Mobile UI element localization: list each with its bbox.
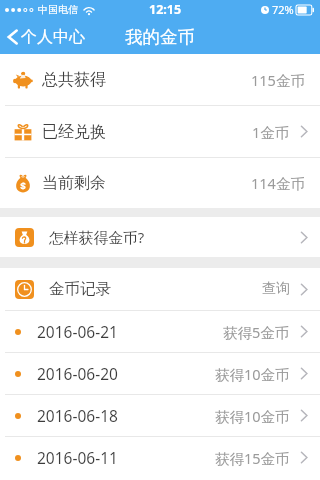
button[interactable]: Coin records (0, 268, 320, 310)
button[interactable]: Current balance (0, 158, 320, 208)
other: How to earn coins (15, 228, 34, 247)
staticText: 个人中心 (21, 27, 85, 47)
other: Redeemed (13, 122, 33, 142)
button[interactable]: 个人中心 (4, 22, 88, 52)
staticText: 怎样获得金币? (49, 227, 145, 247)
staticText: 获得10金币 (215, 364, 290, 384)
staticText: 72% (272, 2, 294, 17)
button[interactable]: 2016-06-21 (0, 311, 320, 352)
staticText: 2016-06-18 (37, 405, 118, 426)
staticText: 查询 (262, 280, 290, 298)
staticText: 2016-06-11 (37, 447, 118, 468)
staticText: 12:15 (149, 1, 182, 18)
staticText: 2016-06-20 (37, 363, 118, 384)
button[interactable]: 2016-06-18 (0, 395, 320, 436)
staticText: 当前剩余 (42, 173, 106, 193)
button[interactable]: How to earn coins (0, 217, 320, 257)
other: Current balance (13, 173, 33, 193)
staticText: 我的金币 (125, 26, 195, 48)
staticText: 中国电信 (38, 3, 78, 16)
staticText: 已经兑换 (42, 122, 106, 142)
staticText: 114金币 (251, 173, 305, 193)
staticText: 获得15金币 (215, 448, 290, 468)
staticText: 总共获得 (42, 70, 106, 90)
button[interactable]: Redeemed (0, 106, 320, 157)
staticText: 金币记录 (49, 279, 111, 299)
other: Total earned (13, 70, 33, 90)
staticText: 获得5金币 (223, 322, 290, 342)
button[interactable]: Total earned (0, 54, 320, 105)
button[interactable]: 2016-06-20 (0, 353, 320, 394)
button[interactable]: 2016-06-11 (0, 437, 320, 478)
staticText: 2016-06-21 (37, 321, 118, 342)
staticText: 115金币 (251, 70, 305, 90)
other: Coin records (15, 280, 34, 299)
staticText: 1金币 (252, 122, 290, 142)
staticText: 获得10金币 (215, 406, 290, 426)
